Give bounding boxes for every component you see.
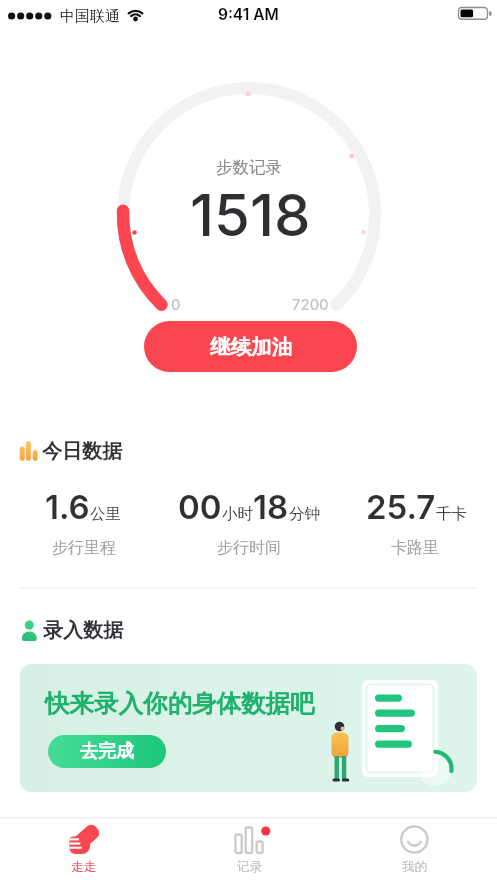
staticText: 我的 (402, 859, 427, 875)
staticText: 分钟 (289, 504, 320, 524)
button[interactable] (20, 664, 477, 792)
staticText: 千卡 (436, 504, 467, 524)
staticText: 步行时间 (217, 538, 281, 558)
staticText: 记录 (237, 859, 262, 875)
button[interactable]: 去完成 (48, 735, 166, 768)
staticText: 9:41 AM (218, 5, 279, 24)
button[interactable] (331, 817, 497, 883)
staticText: 步行里程 (52, 538, 116, 558)
staticText: 小时 (222, 504, 253, 524)
staticText: 18 (253, 487, 289, 527)
staticText: 继续加油 (210, 334, 292, 360)
staticText: 步数记录 (216, 157, 282, 178)
staticText: 快来录入你的身体数据吧 (45, 688, 315, 719)
staticText: 中国联通 (60, 7, 120, 26)
staticText: 7200 (292, 295, 329, 313)
staticText: 卡路里 (391, 538, 439, 558)
staticText: 走走 (71, 859, 96, 875)
button[interactable] (165, 817, 331, 883)
staticText: 1.6 (45, 487, 90, 527)
staticText: 0 (171, 295, 181, 313)
staticText: 25.7 (366, 487, 436, 527)
staticText: 1518 (190, 180, 311, 250)
staticText: 今日数据 (42, 439, 122, 464)
button[interactable] (0, 817, 165, 883)
staticText: 公里 (90, 504, 121, 524)
staticText: 去完成 (80, 740, 134, 763)
staticText: 录入数据 (43, 618, 123, 643)
staticText: 00 (178, 487, 222, 527)
button[interactable]: 继续加油 (144, 321, 357, 372)
